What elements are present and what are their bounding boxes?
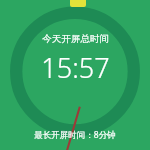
staticText: 15:57	[41, 49, 110, 86]
staticText: 今天开屏总时间	[42, 33, 109, 45]
button[interactable]: 最长开屏时间：8分钟	[34, 129, 116, 141]
button[interactable]: 今天开屏总时间	[41, 33, 110, 86]
staticText: 最长开屏时间：8分钟	[34, 129, 116, 141]
button[interactable]: Screen time marker	[70, 0, 86, 7]
